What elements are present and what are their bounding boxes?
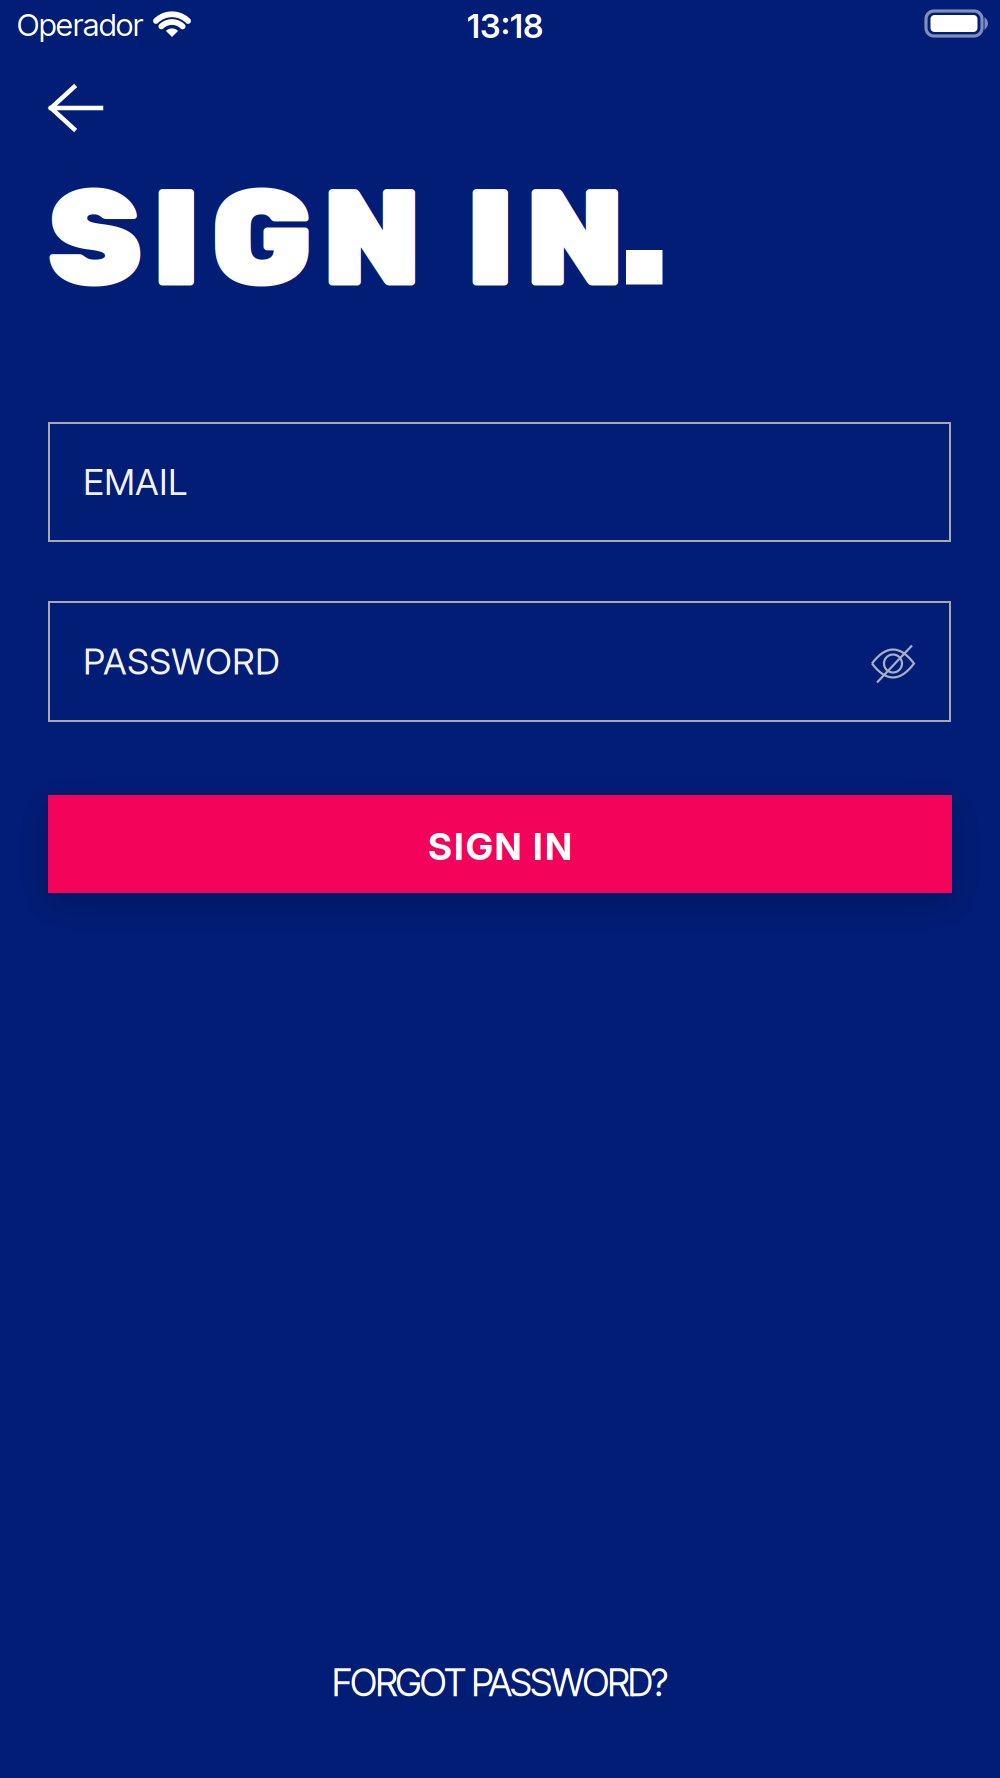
button[interactable]: EMAIL	[49, 423, 950, 541]
button[interactable]: SIGN IN	[48, 795, 952, 893]
button[interactable]: PASSWORD	[49, 602, 950, 721]
staticText: EMAIL	[83, 460, 187, 504]
staticText: PASSWORD	[83, 640, 280, 683]
button[interactable]	[49, 86, 103, 130]
button[interactable]: FORGOT PASSWORD?	[0, 1660, 1000, 1705]
staticText: 13:18	[467, 6, 543, 46]
staticText: FORGOT PASSWORD?	[332, 1660, 668, 1705]
staticText: SIGN IN	[428, 824, 572, 869]
staticText: SIGN IN	[47, 157, 626, 320]
staticText: Operador	[17, 6, 143, 43]
button[interactable]	[868, 639, 918, 687]
